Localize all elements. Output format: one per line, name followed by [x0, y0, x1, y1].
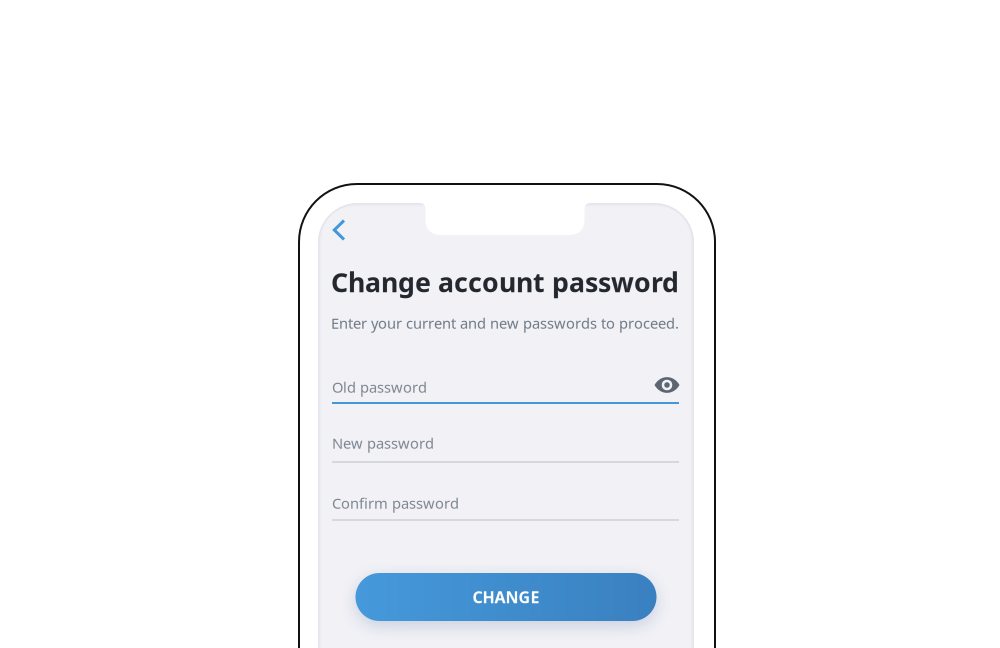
button[interactable]: Back — [324, 211, 353, 249]
button[interactable]: Confirm password — [332, 203, 679, 522]
button[interactable]: Show password — [649, 370, 684, 399]
staticText: Confirm password — [332, 493, 459, 513]
button[interactable]: Old password — [332, 203, 679, 405]
staticText: New password — [332, 433, 434, 453]
staticText: Change account password — [331, 264, 679, 300]
staticText: Old password — [332, 377, 427, 397]
staticText: CHANGE — [472, 586, 539, 608]
staticText: Enter your current and new passwords to … — [331, 313, 679, 333]
button[interactable]: New password — [332, 203, 679, 464]
button[interactable]: CHANGE — [355, 573, 656, 621]
